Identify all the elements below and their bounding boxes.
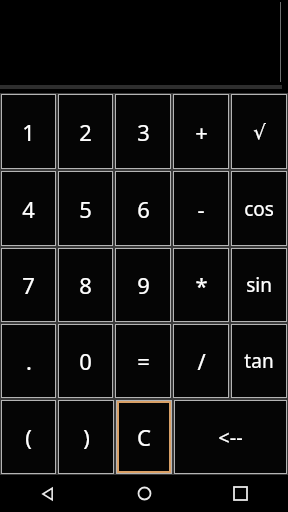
button[interactable]: +: [173, 94, 229, 169]
staticText: C: [137, 422, 151, 452]
button[interactable]: Home: [96, 475, 192, 512]
button[interactable]: 5: [58, 171, 113, 246]
staticText: 5: [79, 194, 92, 224]
staticText: 2: [79, 117, 92, 147]
staticText: 8: [79, 270, 92, 300]
button[interactable]: /: [173, 324, 229, 398]
staticText: tan: [244, 348, 274, 374]
staticText: /: [197, 346, 206, 376]
staticText: *: [195, 270, 208, 300]
button[interactable]: ): [58, 400, 114, 474]
button[interactable]: -: [173, 171, 229, 246]
button[interactable]: cos: [231, 171, 287, 246]
staticText: 6: [137, 194, 150, 224]
button[interactable]: C: [116, 400, 172, 474]
button[interactable]: 9: [115, 248, 171, 322]
staticText: ): [83, 422, 90, 452]
button[interactable]: √: [231, 94, 287, 169]
staticText: 0: [79, 346, 92, 376]
staticText: +: [195, 117, 208, 147]
staticText: 3: [137, 117, 150, 147]
staticText: -: [197, 194, 205, 224]
staticText: 4: [22, 194, 35, 224]
button[interactable]: 6: [115, 171, 171, 246]
button[interactable]: 3: [115, 94, 171, 169]
staticText: (: [25, 422, 32, 452]
button[interactable]: 7: [1, 248, 56, 322]
button[interactable]: <--: [174, 400, 287, 474]
staticText: 7: [22, 270, 35, 300]
button[interactable]: sin: [231, 248, 287, 322]
staticText: √: [253, 120, 266, 143]
button[interactable]: 2: [58, 94, 113, 169]
staticText: sin: [246, 272, 272, 298]
button[interactable]: (: [1, 400, 56, 474]
button[interactable]: 8: [58, 248, 113, 322]
staticText: =: [137, 346, 150, 376]
button[interactable]: 1: [1, 94, 56, 169]
button[interactable]: Recent apps: [192, 475, 288, 512]
staticText: cos: [244, 196, 274, 222]
staticText: 9: [137, 270, 150, 300]
button[interactable]: =: [115, 324, 171, 398]
button[interactable]: Back: [0, 475, 96, 512]
staticText: .: [26, 346, 32, 376]
button[interactable]: *: [173, 248, 229, 322]
button[interactable]: tan: [231, 324, 287, 398]
staticText: <--: [218, 424, 243, 451]
button[interactable]: 0: [58, 324, 113, 398]
staticText: 1: [22, 117, 35, 147]
button[interactable]: 4: [1, 171, 56, 246]
button[interactable]: .: [1, 324, 56, 398]
